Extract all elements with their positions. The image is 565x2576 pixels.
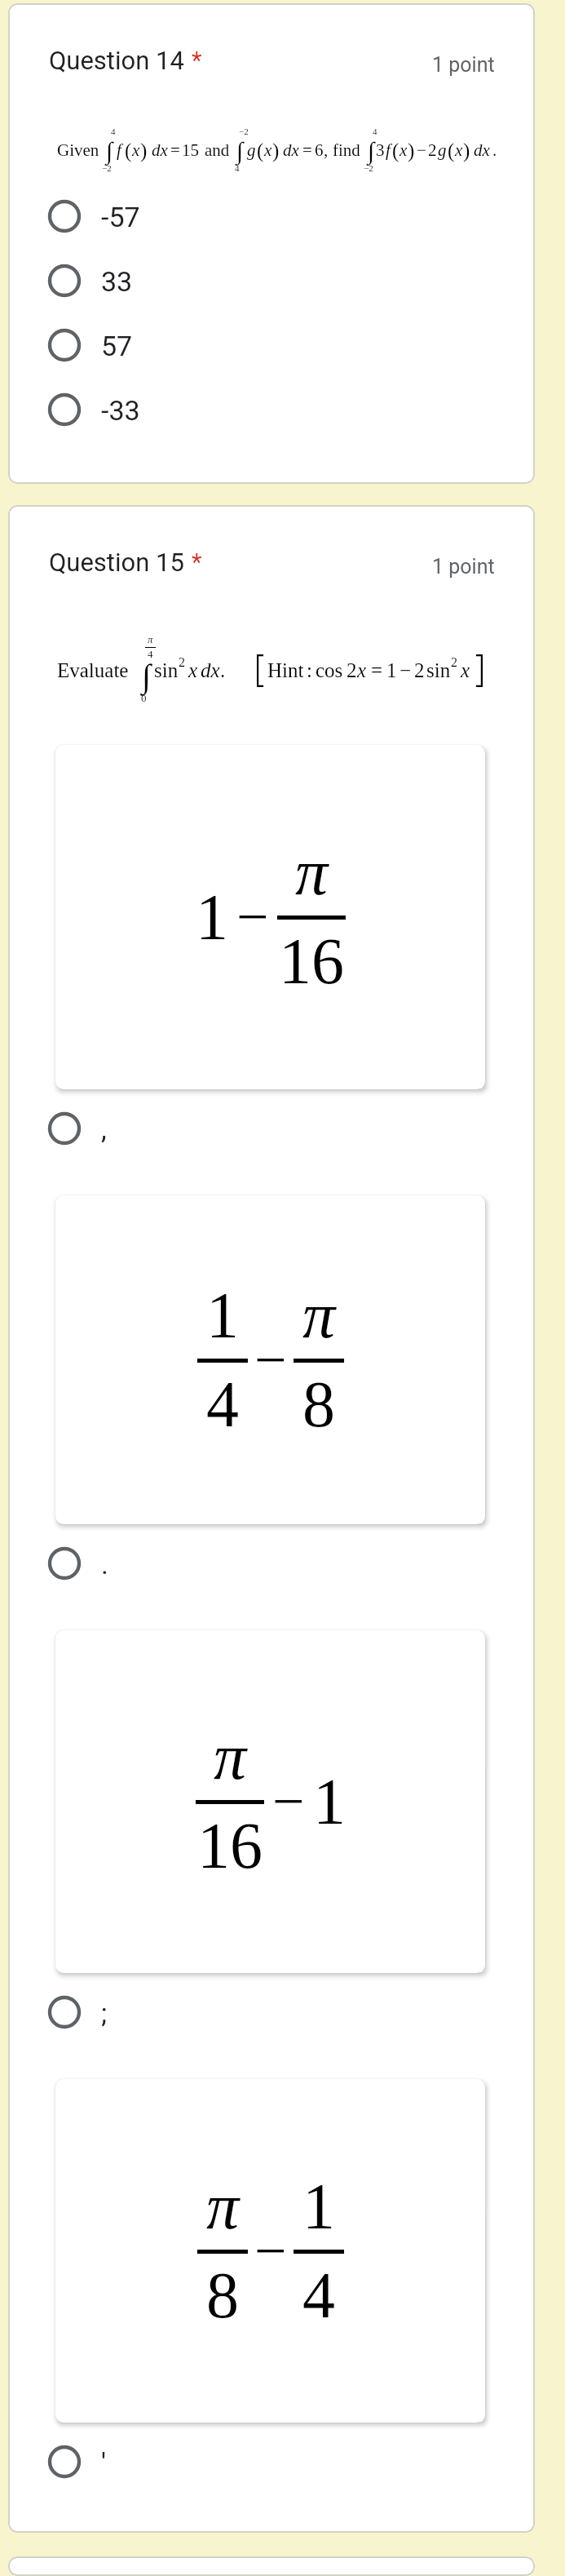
staticText: = <box>302 140 312 159</box>
staticText: ∫ <box>236 137 244 164</box>
button[interactable]: 33 <box>46 248 492 313</box>
staticText: x <box>132 140 140 159</box>
staticText: dx <box>474 140 490 159</box>
staticText: x <box>357 659 367 682</box>
staticText: 4 <box>373 126 377 136</box>
staticText: * <box>192 47 202 74</box>
staticText: 1 <box>302 2170 335 2243</box>
staticText: = <box>170 140 180 159</box>
staticText: dx <box>152 140 168 159</box>
staticText: π <box>206 2170 240 2243</box>
staticText: -33 <box>101 394 140 427</box>
staticText: = <box>371 659 383 682</box>
staticText: dx <box>283 140 299 159</box>
staticText: . <box>220 659 226 682</box>
button[interactable]: -57 <box>46 184 492 248</box>
staticText: g <box>247 140 256 159</box>
staticText: − <box>236 885 269 949</box>
staticText: 3 <box>376 140 385 159</box>
staticText: −2 <box>239 126 249 136</box>
staticText: 8 <box>206 2259 239 2332</box>
staticText: sin <box>154 659 179 682</box>
staticText: x <box>188 659 198 682</box>
staticText: . <box>492 140 497 159</box>
staticText: ; <box>101 1997 108 2029</box>
staticText: ( <box>392 140 399 162</box>
staticText: π <box>295 836 329 909</box>
staticText: − <box>254 2219 287 2283</box>
staticText: − <box>399 659 412 682</box>
staticText: 1 <box>386 659 397 682</box>
staticText: dx <box>201 659 220 682</box>
staticText: 57 <box>101 330 133 362</box>
staticText: find <box>333 140 360 159</box>
staticText: 4 <box>235 163 240 173</box>
button[interactable]: , <box>46 1110 532 1147</box>
staticText: ∫ <box>106 137 113 164</box>
staticText: ) <box>272 140 280 162</box>
staticText: 1 point <box>432 555 495 579</box>
staticText: ) <box>408 140 415 162</box>
staticText: ( <box>257 140 264 162</box>
staticText: x <box>264 140 272 159</box>
staticText: 4 <box>206 1368 239 1441</box>
staticText: π <box>302 1279 336 1352</box>
staticText: π <box>214 1721 247 1793</box>
staticText: * <box>192 548 202 576</box>
staticText: −2 <box>102 163 112 173</box>
button[interactable]: -33 <box>46 377 492 441</box>
staticText: Given <box>57 140 99 159</box>
staticText: −2 <box>364 163 373 173</box>
staticText: 2 <box>451 655 457 670</box>
staticText: 6 <box>315 140 324 159</box>
staticText: Question 14 <box>49 46 184 75</box>
staticText: Question 15 <box>49 548 184 577</box>
staticText: x <box>399 140 408 159</box>
staticText: , <box>101 1113 107 1146</box>
button[interactable]: ' <box>46 2443 532 2481</box>
staticText: ∫ <box>142 658 151 694</box>
staticText: 1 <box>313 1766 346 1838</box>
staticText: , <box>324 140 329 159</box>
staticText: : <box>307 659 312 682</box>
staticText: f <box>117 140 121 159</box>
staticText: − <box>254 1328 287 1392</box>
staticText: ) <box>463 140 470 162</box>
staticText: x <box>461 659 470 682</box>
button[interactable]: ; <box>46 1993 532 2031</box>
staticText: 33 <box>101 265 133 298</box>
staticText: and <box>205 140 230 159</box>
staticText: 1 point <box>432 53 495 77</box>
staticText: 16 <box>279 925 344 998</box>
staticText: 16 <box>197 1810 263 1882</box>
staticText: Hint <box>267 659 304 682</box>
staticText: ) <box>140 140 148 162</box>
button[interactable]: . <box>46 1545 532 1582</box>
staticText: g <box>438 140 447 159</box>
staticText: ( <box>125 140 132 162</box>
staticText: − <box>272 1770 305 1833</box>
staticText: 4 <box>111 126 116 136</box>
staticText: − <box>417 140 426 159</box>
staticText: π <box>148 633 153 645</box>
staticText: 1 <box>206 1279 239 1352</box>
staticText: x <box>455 140 463 159</box>
staticText: cos <box>316 659 343 682</box>
staticText: f <box>386 140 391 159</box>
staticText: 2 <box>179 655 185 670</box>
staticText: 4 <box>302 2259 335 2332</box>
staticText: ( <box>448 140 455 162</box>
staticText: -57 <box>101 201 140 233</box>
staticText: 0 <box>141 692 147 703</box>
button[interactable]: 57 <box>46 313 492 377</box>
staticText: sin <box>426 659 451 682</box>
staticText: ' <box>101 2446 106 2479</box>
staticText: 8 <box>302 1368 335 1441</box>
staticText: ∫ <box>368 137 375 164</box>
staticText: 2 <box>414 659 425 682</box>
staticText: 2 <box>428 140 437 159</box>
staticText: . <box>101 1548 108 1581</box>
staticText: 4 <box>148 648 153 659</box>
staticText: Evaluate <box>57 659 129 682</box>
staticText: 1 <box>196 881 228 954</box>
